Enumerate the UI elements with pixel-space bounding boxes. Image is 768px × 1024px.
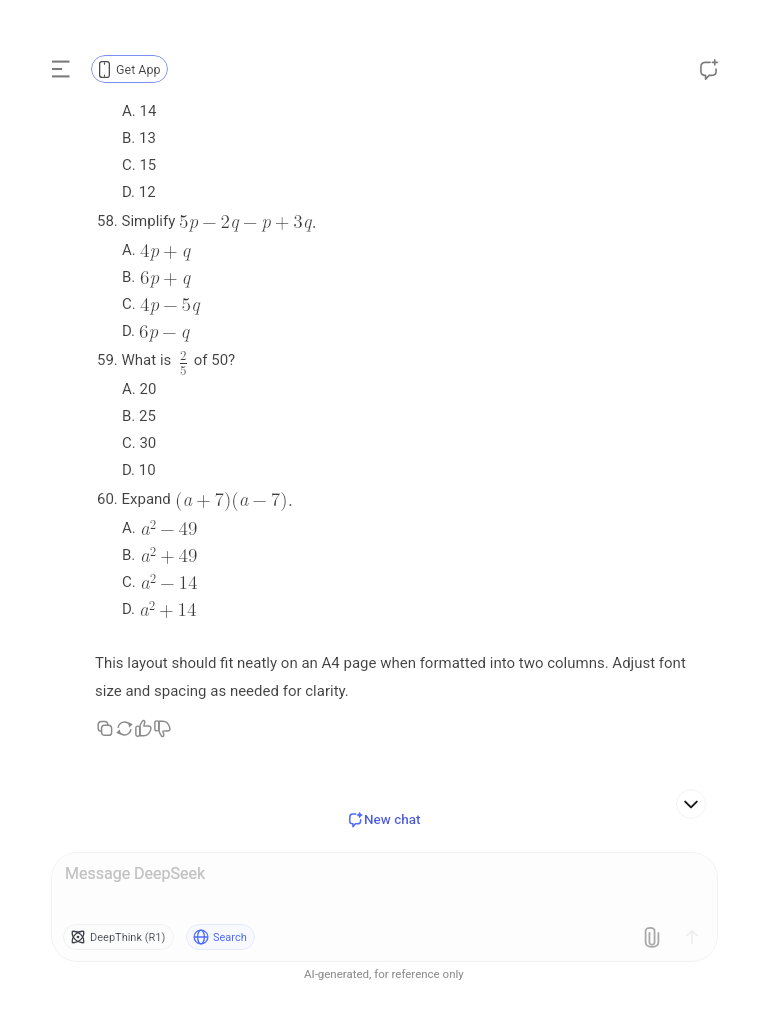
staticText: 5: [180, 360, 187, 378]
staticText: D. 12: [122, 183, 156, 201]
staticText: Search: [213, 931, 247, 944]
button[interactable]: Like: [134, 717, 153, 739]
button[interactable]: Menu: [52, 55, 74, 83]
button[interactable]: Message DeepSeek: [51, 852, 718, 902]
button[interactable]: Scroll to bottom: [676, 789, 706, 819]
staticText: B.: [122, 546, 140, 564]
staticText: 59. What is: [97, 351, 176, 369]
staticText: D.: [122, 600, 139, 618]
staticText: a2 + 49: [140, 541, 198, 568]
staticText: 4p + q: [140, 236, 191, 263]
staticText: B. 13: [122, 129, 156, 147]
button[interactable]: New chat: [348, 811, 421, 827]
staticText: a2 + 14: [139, 595, 197, 622]
staticText: C.: [122, 295, 140, 313]
button[interactable]: Regenerate: [115, 717, 134, 739]
staticText: (a + 7)(a − 7).: [175, 485, 294, 512]
staticText: This layout should fit neatly on an A4 p…: [95, 654, 696, 700]
staticText: 5p − 2q − p + 3q.: [179, 207, 317, 234]
staticText: A.: [122, 519, 140, 537]
button[interactable]: Get App: [91, 55, 168, 83]
staticText: C. 30: [122, 434, 157, 452]
staticText: 4p − 5q: [140, 290, 200, 317]
staticText: B.: [122, 268, 140, 286]
staticText: of 50?: [190, 351, 236, 369]
staticText: Message DeepSeek: [65, 864, 206, 883]
staticText: A. 14: [122, 102, 157, 120]
staticText: a2 − 49: [140, 514, 198, 541]
staticText: C. 15: [122, 156, 157, 174]
button[interactable]: Attach file: [639, 924, 665, 950]
button[interactable]: New chat: [694, 55, 722, 83]
button[interactable]: Dislike: [153, 717, 172, 739]
staticText: D. 10: [122, 461, 156, 479]
staticText: D.: [122, 322, 139, 340]
button[interactable]: Send: [679, 924, 705, 950]
staticText: A.: [122, 241, 140, 259]
button[interactable]: DeepThink (R1): [63, 924, 174, 950]
staticText: C.: [122, 573, 140, 591]
staticText: AI-generated, for reference only: [304, 967, 464, 980]
staticText: B. 25: [122, 407, 156, 425]
staticText: DeepThink (R1): [90, 931, 166, 944]
staticText: 58. Simplify: [97, 212, 179, 230]
staticText: 6p − q: [139, 317, 190, 344]
staticText: 6p + q: [140, 263, 191, 290]
staticText: New chat: [364, 811, 421, 827]
button[interactable]: Search: [186, 924, 255, 950]
staticText: A. 20: [122, 380, 157, 398]
staticText: a2 − 14: [140, 568, 198, 595]
staticText: 2: [180, 345, 187, 363]
button[interactable]: Copy: [96, 717, 115, 739]
staticText: 60. Expand: [97, 490, 175, 508]
staticText: Get App: [116, 62, 161, 77]
